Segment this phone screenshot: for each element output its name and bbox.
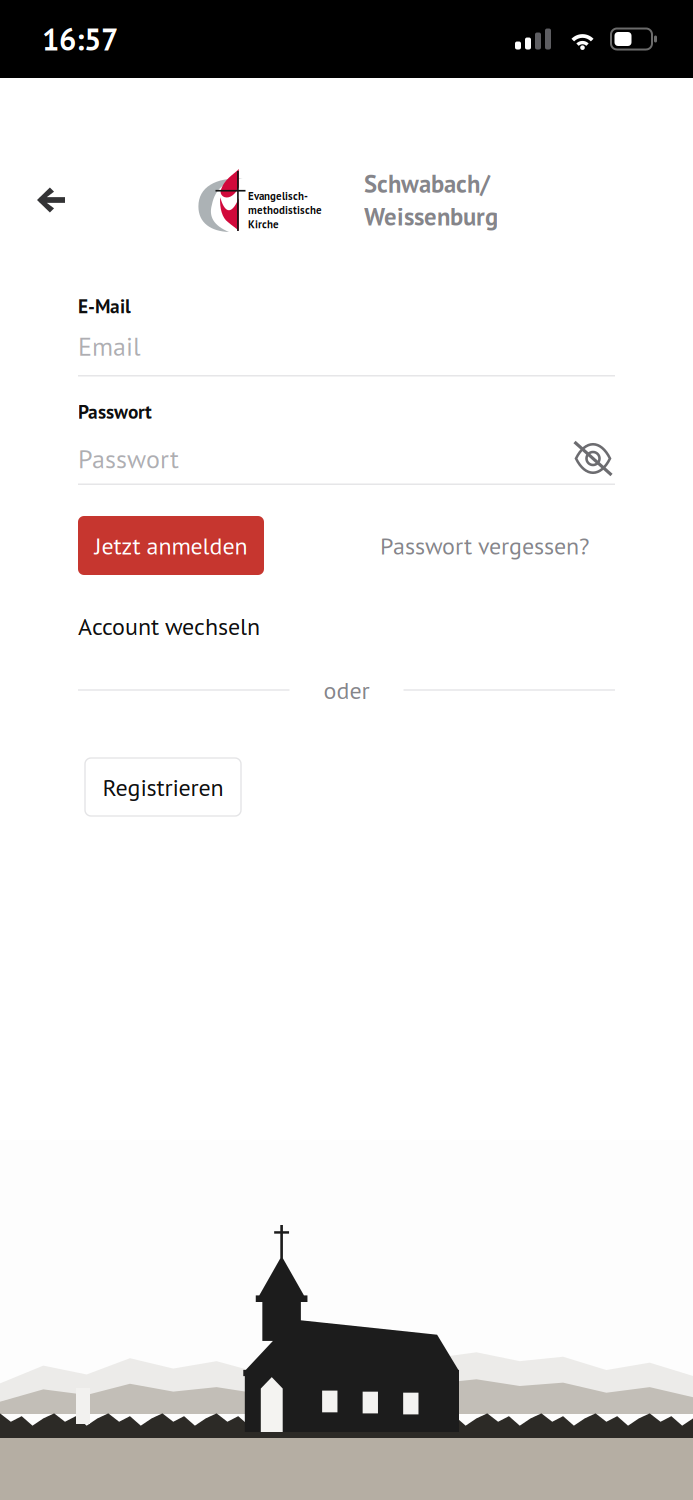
- staticText: Weissenburg: [364, 200, 498, 232]
- staticText: Evangelisch-: [248, 189, 308, 203]
- staticText: Registrieren: [102, 771, 223, 803]
- button[interactable]: Show password: [571, 437, 615, 479]
- staticText: Kirche: [248, 217, 279, 231]
- button[interactable]: Passwort vergessen?: [380, 525, 589, 565]
- staticText: Passwort vergessen?: [380, 530, 589, 561]
- staticText: Passwort: [78, 442, 179, 475]
- staticText: Account wechseln: [78, 610, 260, 642]
- staticText: Passwort: [78, 399, 152, 424]
- button[interactable]: Account wechseln: [78, 609, 615, 643]
- staticText: Jetzt anmelden: [94, 530, 247, 561]
- button[interactable]: Back: [0, 163, 102, 236]
- staticText: Email: [78, 329, 141, 363]
- staticText: oder: [323, 674, 369, 706]
- staticText: E-Mail: [78, 293, 131, 318]
- button[interactable]: Jetzt anmelden: [78, 516, 264, 575]
- staticText: 16:57: [42, 19, 118, 59]
- button[interactable]: Registrieren: [85, 758, 241, 816]
- staticText: methodistische: [248, 203, 322, 217]
- staticText: Schwabach/: [364, 168, 490, 199]
